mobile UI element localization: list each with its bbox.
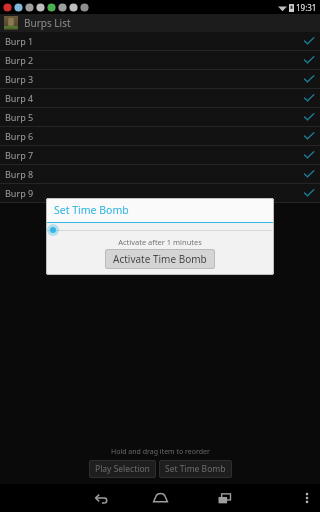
button[interactable]: Burp 5 xyxy=(0,108,320,126)
button[interactable]: Burp 7 xyxy=(0,146,320,164)
button[interactable]: Burp 1 xyxy=(0,32,320,50)
staticText: Hold and drag item to reorder xyxy=(111,447,210,457)
button[interactable]: Home xyxy=(140,484,180,512)
staticText: Burp 1 xyxy=(5,35,34,47)
staticText: Play Selection xyxy=(95,463,150,475)
button[interactable]: More options xyxy=(294,484,320,512)
button[interactable]: Recent apps xyxy=(204,484,244,512)
staticText: Burp 5 xyxy=(5,111,34,123)
staticText: Burp 9 xyxy=(5,187,34,199)
button[interactable]: Burp 8 xyxy=(0,165,320,183)
staticText: Activate Time Bomb xyxy=(113,252,207,266)
staticText: Burp 4 xyxy=(5,92,34,104)
staticText: Burp 6 xyxy=(5,130,34,142)
button[interactable]: Burp 6 xyxy=(0,127,320,145)
button[interactable]: Burp 9 xyxy=(0,184,320,202)
staticText: 19:31 xyxy=(296,2,317,13)
button[interactable]: Back xyxy=(80,484,120,512)
button[interactable]: Activate Time Bomb xyxy=(105,249,215,269)
button[interactable]: Burp 3 xyxy=(0,70,320,88)
button[interactable]: Burp 4 xyxy=(0,89,320,107)
button[interactable]: Burp 2 xyxy=(0,51,320,69)
staticText: Burp 7 xyxy=(5,149,34,161)
staticText: Set Time Bomb xyxy=(165,463,226,475)
staticText: Burps List xyxy=(24,16,71,30)
staticText: Burp 2 xyxy=(5,54,34,66)
staticText: Burp 8 xyxy=(5,168,34,180)
staticText: Activate after 1 minutes xyxy=(46,237,274,247)
button[interactable] xyxy=(46,223,274,237)
button[interactable]: Set Time Bomb xyxy=(159,460,232,478)
button[interactable]: Play Selection xyxy=(89,460,156,478)
staticText: Burp 3 xyxy=(5,73,34,85)
staticText: Set Time Bomb xyxy=(54,203,129,217)
